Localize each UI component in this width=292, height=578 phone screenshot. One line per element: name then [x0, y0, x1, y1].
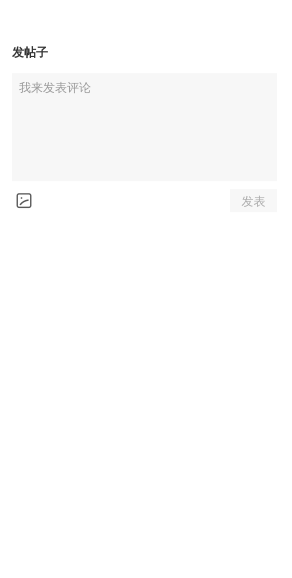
button[interactable]: Add photo — [12, 189, 36, 212]
button[interactable]: 发表 — [230, 189, 277, 212]
staticText: 发帖子 — [12, 45, 48, 60]
staticText: 我来发表评论 — [19, 80, 91, 95]
staticText: 发表 — [241, 194, 265, 209]
button[interactable]: 我来发表评论 — [12, 73, 277, 181]
